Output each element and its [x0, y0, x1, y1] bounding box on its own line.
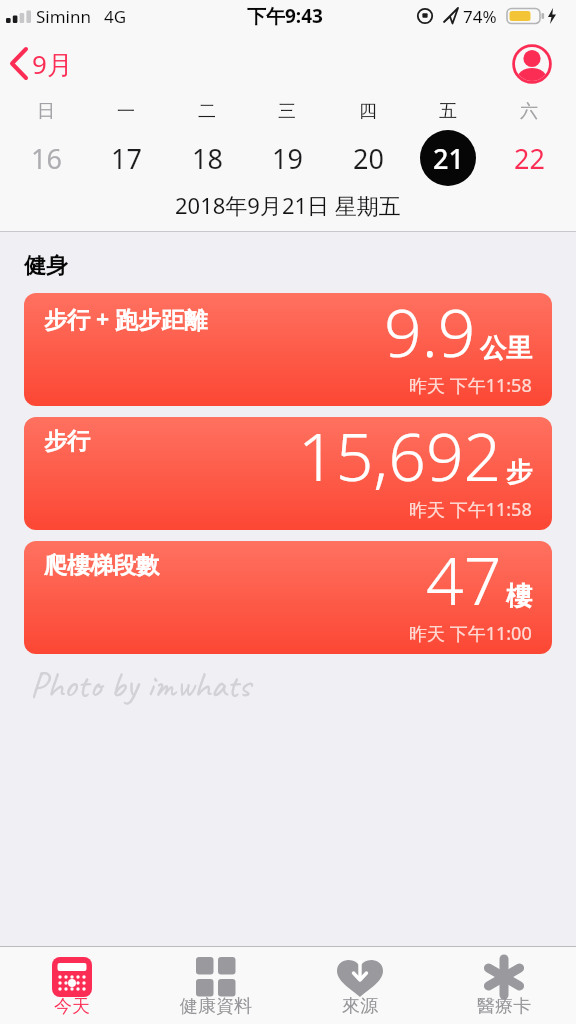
staticText: 19	[272, 140, 303, 177]
staticText: 20	[353, 140, 384, 177]
staticText: 六	[520, 100, 538, 123]
staticText: 22	[514, 140, 545, 177]
staticText: 昨天 下午11:58	[409, 373, 532, 398]
staticText: 醫療卡	[477, 995, 531, 1018]
staticText: Siminn	[36, 5, 92, 28]
staticText: 公里	[480, 332, 532, 365]
staticText: 步行 + 跑步距離	[44, 303, 208, 334]
staticText: 來源	[342, 995, 378, 1018]
staticText: 昨天 下午11:00	[409, 621, 532, 646]
staticText: 二	[198, 100, 216, 123]
staticText: 74%	[463, 5, 497, 28]
staticText: 15,692	[298, 417, 502, 500]
staticText: 爬樓梯段數	[44, 551, 159, 580]
staticText: 四	[359, 100, 377, 123]
staticText: 健身	[24, 252, 68, 280]
staticText: 健康資料	[180, 995, 252, 1018]
staticText: 樓	[506, 580, 532, 613]
staticText: 9.9	[384, 293, 476, 376]
staticText: 18	[192, 140, 223, 177]
staticText: 五	[439, 100, 457, 123]
staticText: Photo by imwhats	[30, 662, 251, 707]
staticText: 21	[433, 140, 464, 177]
staticText: 三	[278, 100, 296, 123]
staticText: 下午9:43	[247, 3, 323, 29]
staticText: 昨天 下午11:58	[409, 497, 532, 522]
staticText: 17	[111, 140, 142, 177]
staticText: 步	[506, 456, 532, 489]
staticText: 4G	[104, 5, 127, 28]
staticText: 一	[117, 100, 135, 123]
staticText: 今天	[54, 995, 90, 1018]
staticText: 步行	[44, 427, 90, 456]
staticText: 9月	[32, 46, 73, 82]
staticText: 16	[31, 140, 62, 177]
staticText: 2018年9月21日 星期五	[175, 190, 401, 220]
staticText: 日	[37, 100, 55, 123]
staticText: 47	[426, 541, 502, 624]
